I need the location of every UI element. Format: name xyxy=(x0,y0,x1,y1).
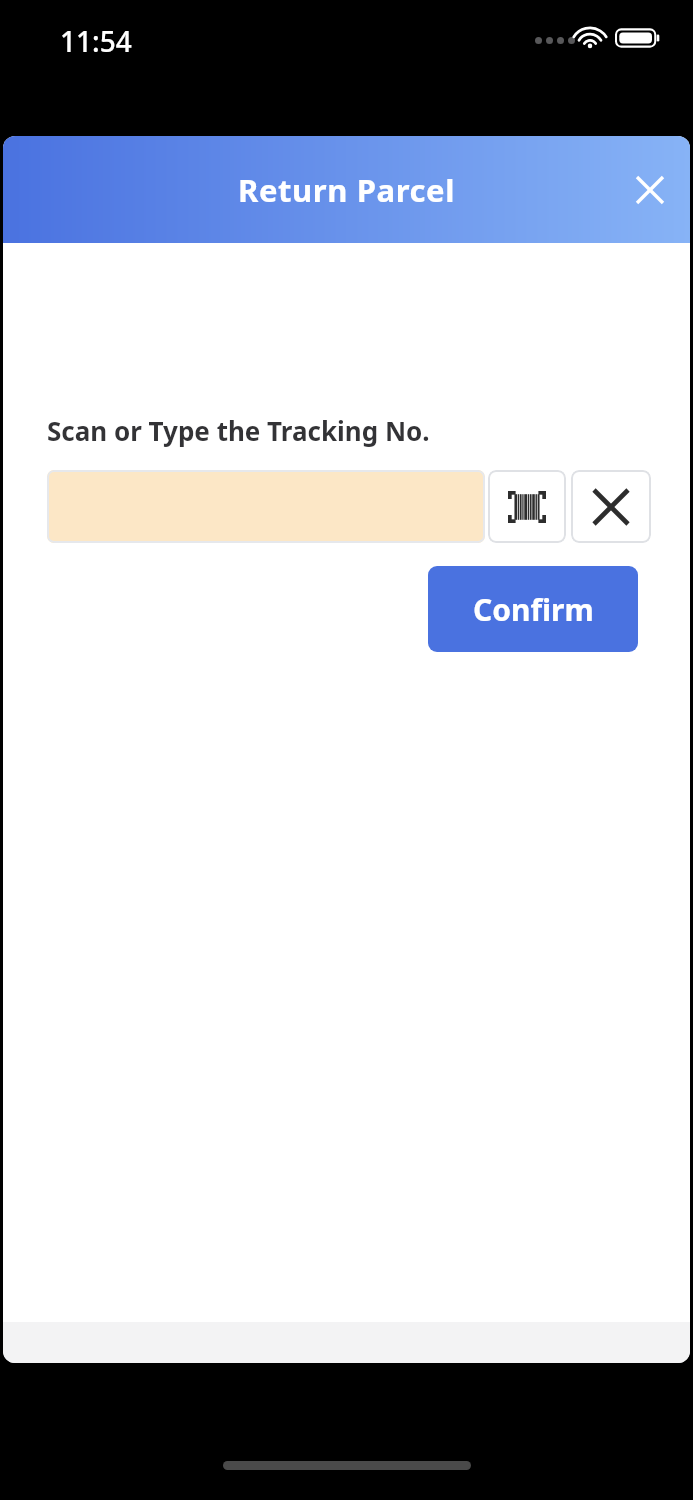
staticText: Confirm xyxy=(473,589,594,630)
staticText: Return Parcel xyxy=(3,169,690,211)
button[interactable]: Clear xyxy=(571,470,651,543)
button[interactable]: Confirm xyxy=(428,566,638,652)
button[interactable] xyxy=(47,470,485,543)
button[interactable]: Scan barcode xyxy=(488,470,566,543)
staticText: Scan or Type the Tracking No. xyxy=(47,413,430,448)
button[interactable]: Close xyxy=(622,162,678,218)
staticText: 11:54 xyxy=(60,22,132,60)
